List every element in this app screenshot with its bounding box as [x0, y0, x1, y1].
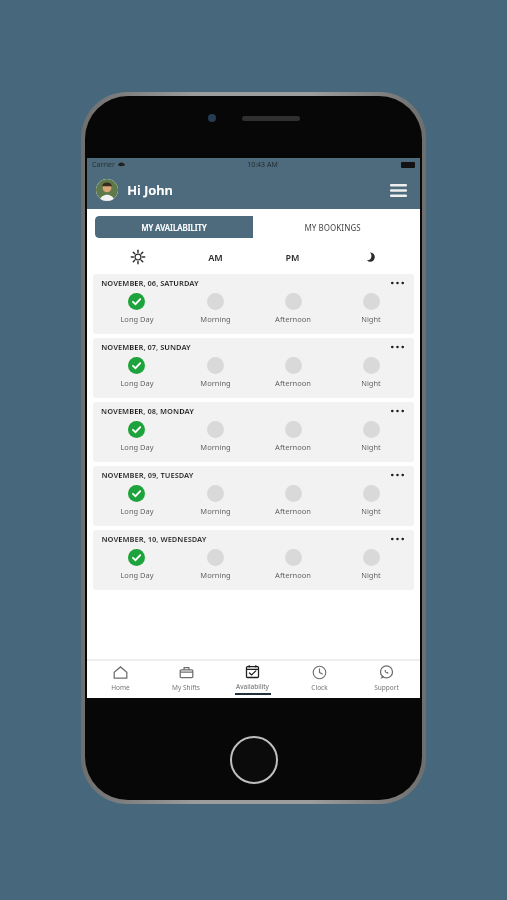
- staticText: Long Day: [120, 442, 154, 452]
- staticText: Afternoon: [275, 442, 311, 452]
- button[interactable]: More options: [388, 468, 406, 482]
- button[interactable]: Long Day: [97, 355, 176, 398]
- button[interactable]: PM: [254, 245, 331, 269]
- staticText: NOVEMBER, 10, WEDNESDAY: [101, 534, 207, 544]
- staticText: Morning: [200, 506, 231, 516]
- button[interactable]: Long Day: [97, 419, 176, 462]
- button[interactable]: Night: [332, 483, 410, 526]
- button[interactable]: Availability: [219, 660, 286, 698]
- button[interactable]: NOVEMBER, 06, SATURDAY: [93, 274, 414, 334]
- staticText: Hi John: [127, 181, 173, 199]
- staticText: Afternoon: [275, 570, 311, 580]
- button[interactable]: Afternoon: [254, 355, 332, 398]
- staticText: Home: [111, 683, 130, 692]
- staticText: Carrier: [92, 160, 115, 170]
- button[interactable]: Morning: [176, 419, 254, 462]
- button[interactable]: Afternoon: [254, 291, 332, 334]
- button[interactable]: MY BOOKINGS: [253, 216, 412, 238]
- staticText: Morning: [200, 442, 231, 452]
- staticText: Support: [374, 683, 399, 692]
- button[interactable]: Afternoon: [254, 419, 332, 462]
- staticText: Afternoon: [275, 506, 311, 516]
- staticText: Long Day: [120, 378, 154, 388]
- staticText: NOVEMBER, 09, TUESDAY: [101, 470, 194, 480]
- button[interactable]: NOVEMBER, 08, MONDAY: [93, 402, 414, 462]
- staticText: 10:43 AM: [247, 160, 278, 170]
- button[interactable]: Long Day: [97, 291, 176, 334]
- button[interactable]: Morning: [176, 355, 254, 398]
- button[interactable]: Morning: [176, 291, 254, 334]
- staticText: AM: [208, 251, 223, 263]
- staticText: Night: [361, 314, 381, 324]
- button[interactable]: Afternoon: [254, 547, 332, 590]
- staticText: Long Day: [120, 570, 154, 580]
- staticText: Afternoon: [275, 378, 311, 388]
- staticText: My Shifts: [172, 683, 200, 692]
- button[interactable]: Support: [353, 660, 420, 698]
- button[interactable]: Night: [332, 419, 410, 462]
- button[interactable]: More options: [388, 532, 406, 546]
- button[interactable]: MY AVAILABILITY: [95, 216, 253, 238]
- button[interactable]: Afternoon: [254, 483, 332, 526]
- button[interactable]: More options: [388, 276, 406, 290]
- button[interactable]: Night: [332, 291, 410, 334]
- button[interactable]: Menu: [385, 177, 411, 203]
- staticText: Long Day: [120, 314, 154, 324]
- staticText: Morning: [200, 314, 231, 324]
- button[interactable]: More options: [388, 404, 406, 418]
- staticText: NOVEMBER, 08, MONDAY: [101, 406, 194, 416]
- staticText: Night: [361, 506, 381, 516]
- staticText: MY AVAILABILITY: [141, 222, 207, 233]
- staticText: Afternoon: [275, 314, 311, 324]
- button[interactable]: My Shifts: [153, 660, 219, 698]
- button[interactable]: NOVEMBER, 10, WEDNESDAY: [93, 530, 414, 590]
- button[interactable]: Profile: [96, 179, 118, 201]
- staticText: MY BOOKINGS: [304, 222, 361, 233]
- button[interactable]: More options: [388, 340, 406, 354]
- button[interactable]: Long day: [99, 245, 177, 269]
- staticText: Morning: [200, 570, 231, 580]
- button[interactable]: Clock: [286, 660, 353, 698]
- staticText: Morning: [200, 378, 231, 388]
- button[interactable]: NOVEMBER, 07, SUNDAY: [93, 338, 414, 398]
- staticText: PM: [285, 251, 300, 263]
- staticText: Night: [361, 570, 381, 580]
- staticText: Night: [361, 378, 381, 388]
- staticText: NOVEMBER, 06, SATURDAY: [101, 278, 199, 288]
- staticText: Clock: [311, 683, 328, 692]
- staticText: NOVEMBER, 07, SUNDAY: [101, 342, 191, 352]
- staticText: Availability: [236, 682, 269, 691]
- button[interactable]: NOVEMBER, 09, TUESDAY: [93, 466, 414, 526]
- button[interactable]: Long Day: [97, 483, 176, 526]
- button[interactable]: Night: [332, 547, 410, 590]
- button[interactable]: Morning: [176, 483, 254, 526]
- button[interactable]: Night: [332, 355, 410, 398]
- staticText: Night: [361, 442, 381, 452]
- staticText: Long Day: [120, 506, 154, 516]
- button[interactable]: AM: [177, 245, 254, 269]
- button[interactable]: Morning: [176, 547, 254, 590]
- button[interactable]: Night: [331, 245, 408, 269]
- button[interactable]: Long Day: [97, 547, 176, 590]
- button[interactable]: Home: [87, 660, 153, 698]
